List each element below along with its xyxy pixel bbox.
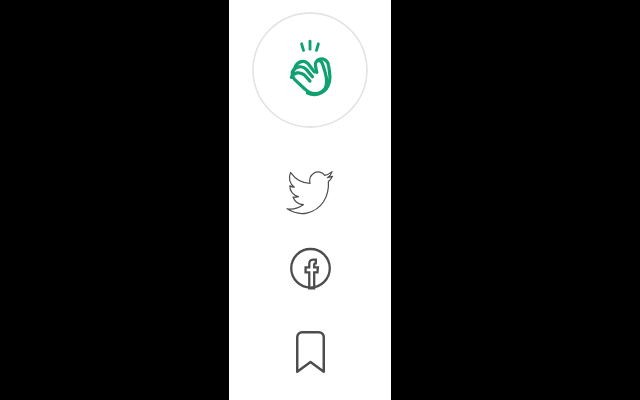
button[interactable]: Share on Twitter (270, 160, 350, 212)
button[interactable]: Share on Facebook (270, 243, 350, 296)
button[interactable]: Bookmark (270, 325, 350, 379)
button[interactable]: Clap (252, 12, 368, 128)
